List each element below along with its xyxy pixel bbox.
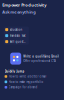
button[interactable]: How to make my portfolio — [5, 80, 51, 84]
button[interactable]: Campaign for a brand — [5, 85, 51, 89]
staticText: Write a qualifying Email — [23, 55, 59, 58]
staticText: Education — [10, 28, 23, 31]
staticText: Translate Text — [10, 34, 26, 37]
staticText: Quickly Jump — [5, 70, 25, 73]
button[interactable]: Education — [4, 27, 29, 33]
button[interactable]: How to write a better email — [5, 74, 51, 79]
staticText: Offer a professional CTA — [23, 59, 56, 63]
staticText: How to make my portfolio — [9, 80, 44, 84]
staticText: Ask me anything — [2, 9, 36, 15]
button[interactable]: Translate Text — [4, 33, 29, 39]
staticText: How to write a better email — [9, 75, 47, 78]
staticText: Campaign for a brand — [9, 85, 38, 89]
staticText: Skill question — [10, 40, 26, 43]
button[interactable]: Skill question — [4, 39, 29, 45]
staticText: Empower Productivity — [2, 2, 46, 8]
